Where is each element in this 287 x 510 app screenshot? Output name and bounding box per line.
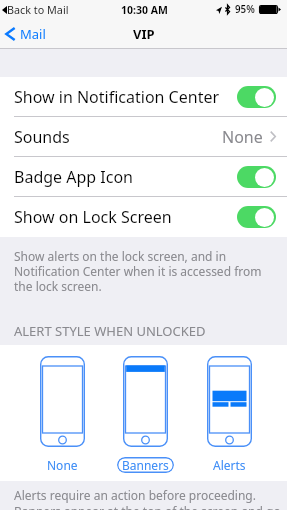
button[interactable]: Back to Mail bbox=[0, 0, 69, 19]
staticText: Alerts bbox=[213, 457, 246, 473]
button[interactable]: Banners bbox=[105, 345, 185, 481]
staticText: ALERT STYLE WHEN UNLOCKED bbox=[14, 322, 206, 340]
staticText: Show in Notification Center bbox=[14, 86, 220, 108]
button[interactable]: None bbox=[22, 345, 102, 481]
staticText: Mail bbox=[20, 25, 46, 43]
button[interactable]: Toggle on bbox=[237, 86, 276, 108]
staticText: Show alerts on the lock screen, and in N… bbox=[14, 248, 273, 294]
staticText: None bbox=[222, 126, 263, 148]
staticText: None bbox=[47, 457, 78, 473]
staticText: 10:30 AM bbox=[121, 3, 168, 17]
staticText: Banners bbox=[122, 457, 169, 473]
staticText: Back to Mail bbox=[7, 2, 69, 17]
button[interactable]: Show in Notification Center bbox=[0, 77, 287, 116]
staticText: 95% bbox=[235, 3, 255, 16]
staticText: Sounds bbox=[14, 126, 70, 148]
button[interactable]: Alerts bbox=[189, 345, 269, 481]
button[interactable]: Show on Lock Screen bbox=[0, 197, 287, 236]
staticText: Alerts require an action before proceedi… bbox=[14, 487, 281, 510]
staticText: Badge App Icon bbox=[14, 166, 133, 188]
button[interactable]: Toggle on bbox=[237, 166, 276, 188]
staticText: VIP bbox=[133, 25, 155, 43]
button[interactable]: Sounds bbox=[0, 117, 287, 156]
button[interactable]: Badge App Icon bbox=[0, 157, 287, 196]
staticText: Show on Lock Screen bbox=[14, 206, 172, 228]
button[interactable]: Toggle on bbox=[237, 206, 276, 228]
button[interactable]: Mail bbox=[0, 19, 54, 49]
